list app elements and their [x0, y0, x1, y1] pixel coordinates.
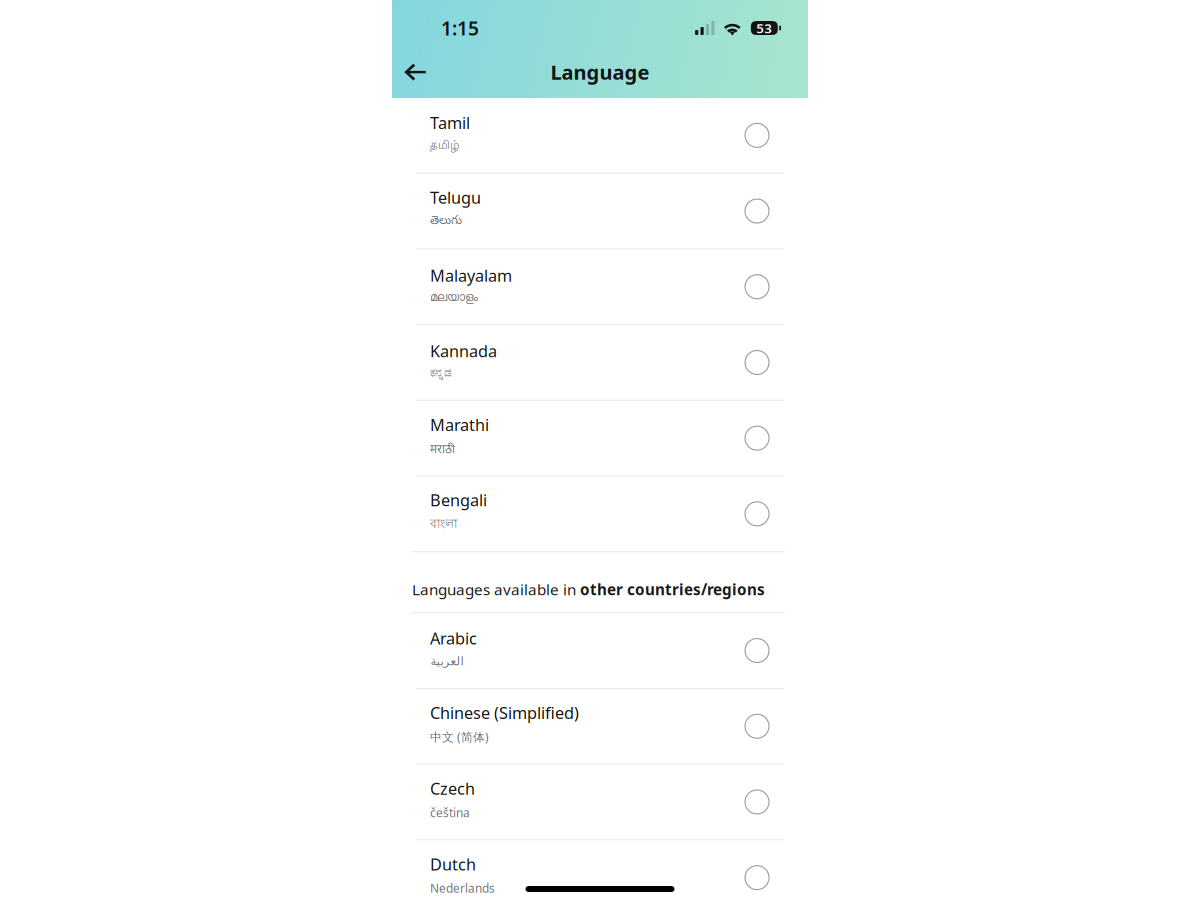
staticText: Language	[550, 58, 649, 86]
staticText: Arabic	[430, 627, 477, 649]
staticText: Nederlands	[430, 880, 495, 896]
button[interactable]: Kannada	[392, 325, 808, 400]
staticText: čeština	[430, 804, 470, 821]
button[interactable]: Marathi	[392, 401, 808, 475]
button[interactable]: Chinese (Simplified)	[392, 689, 808, 764]
button[interactable]: Bengali	[392, 476, 808, 551]
staticText: Tamil	[430, 112, 470, 134]
staticText: Chinese (Simplified)	[430, 702, 579, 724]
staticText: ಕನ್ನಡ	[430, 367, 452, 379]
staticText: Czech	[430, 777, 475, 799]
button[interactable]: Tamil	[392, 98, 808, 173]
staticText: Telugu	[430, 186, 481, 209]
button[interactable]: Malayalam	[392, 249, 808, 324]
staticText: मराठी	[430, 441, 455, 457]
staticText: Dutch	[430, 853, 476, 875]
staticText: 中文 (简体)	[430, 729, 489, 745]
staticText: Languages available in other countries/r…	[412, 579, 765, 599]
staticText: বাংলা	[430, 516, 457, 533]
staticText: 53	[756, 19, 772, 37]
button[interactable]: Dutch	[392, 840, 808, 900]
button[interactable]: Telugu	[392, 174, 808, 248]
staticText: മലയാളം	[430, 291, 478, 303]
button[interactable]: Czech	[392, 765, 808, 839]
staticText: Marathi	[430, 413, 489, 436]
staticText: Kannada	[430, 340, 497, 362]
button[interactable]: Back	[395, 52, 435, 92]
staticText: తెలుగు	[430, 214, 462, 230]
button[interactable]: Arabic	[392, 613, 808, 688]
staticText: العربية	[430, 654, 463, 668]
staticText: Malayalam	[430, 264, 512, 286]
staticText: தமிழ்	[430, 139, 460, 153]
staticText: Bengali	[430, 489, 487, 511]
staticText: 1:15	[441, 15, 479, 41]
